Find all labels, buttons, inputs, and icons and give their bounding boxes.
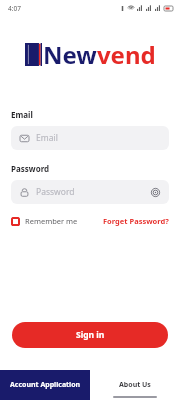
staticText: Email (36, 132, 58, 144)
staticText: Email (11, 109, 33, 120)
staticText: Sign in (76, 329, 105, 341)
staticText: Account Application (10, 380, 81, 390)
button[interactable]: Password (11, 180, 169, 204)
staticText: Password (11, 163, 50, 174)
button[interactable]: Forget Password? (103, 214, 169, 228)
staticText: Remember me (25, 216, 78, 226)
staticText: About Us (119, 380, 151, 390)
button[interactable]: Account Application (0, 370, 90, 400)
button[interactable]: Remember me (11, 214, 78, 228)
staticText: Forget Password? (103, 216, 169, 226)
staticText: 4:07 (8, 4, 21, 13)
staticText: Newvend (43, 38, 156, 71)
button[interactable]: About Us (90, 370, 180, 400)
button[interactable]: Sign in (12, 322, 168, 348)
button[interactable]: Email (11, 126, 169, 150)
staticText: Password (36, 186, 75, 198)
button[interactable]: Show password (151, 188, 160, 197)
